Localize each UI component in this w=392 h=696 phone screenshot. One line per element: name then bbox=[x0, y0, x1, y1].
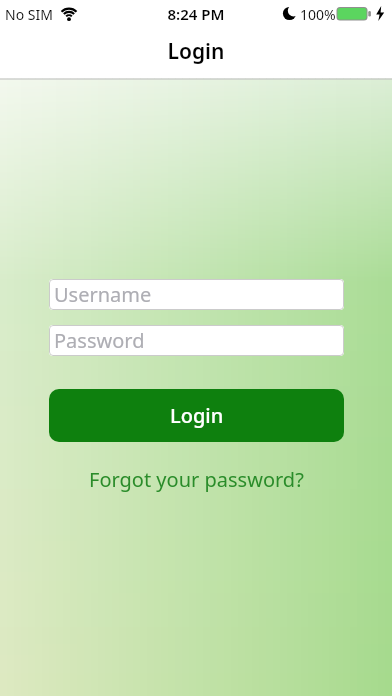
button[interactable]: Password bbox=[49, 325, 344, 356]
button[interactable]: Username bbox=[49, 279, 344, 310]
staticText: Password bbox=[54, 327, 145, 354]
staticText: 100% bbox=[300, 5, 336, 24]
staticText: Login bbox=[170, 402, 224, 429]
staticText: No SIM bbox=[5, 5, 53, 24]
button[interactable]: Login bbox=[49, 389, 344, 442]
staticText: 8:24 PM bbox=[0, 4, 392, 24]
staticText: Login bbox=[0, 37, 392, 66]
staticText: Username bbox=[54, 281, 152, 308]
button[interactable]: Forgot your password? bbox=[89, 466, 304, 493]
